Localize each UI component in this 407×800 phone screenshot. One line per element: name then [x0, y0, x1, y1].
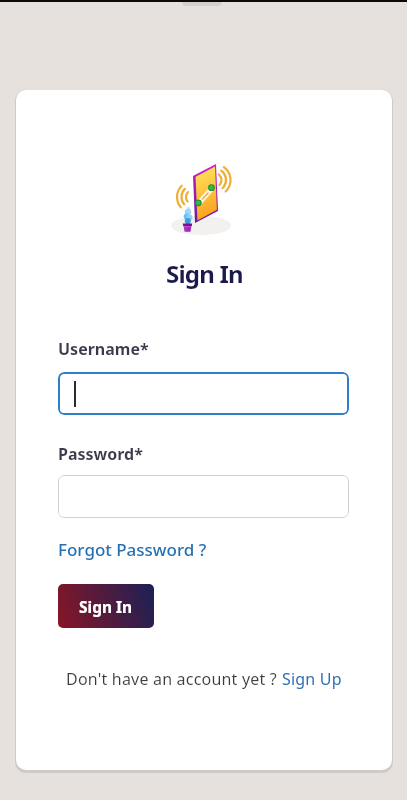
button[interactable]: Sign In	[58, 584, 154, 628]
button[interactable]: Sign Up	[282, 668, 342, 690]
staticText: Sign In	[79, 596, 133, 617]
staticText: Sign In	[166, 257, 243, 290]
staticText: Password*	[58, 443, 143, 465]
button[interactable]	[58, 372, 349, 415]
staticText: Don't have an account yet ?	[66, 668, 282, 690]
staticText: Forgot Password ?	[58, 538, 207, 561]
staticText: Sign Up	[282, 668, 342, 690]
button[interactable]	[58, 475, 349, 518]
button[interactable]: Forgot Password ?	[58, 538, 207, 561]
staticText: Username*	[58, 338, 149, 360]
